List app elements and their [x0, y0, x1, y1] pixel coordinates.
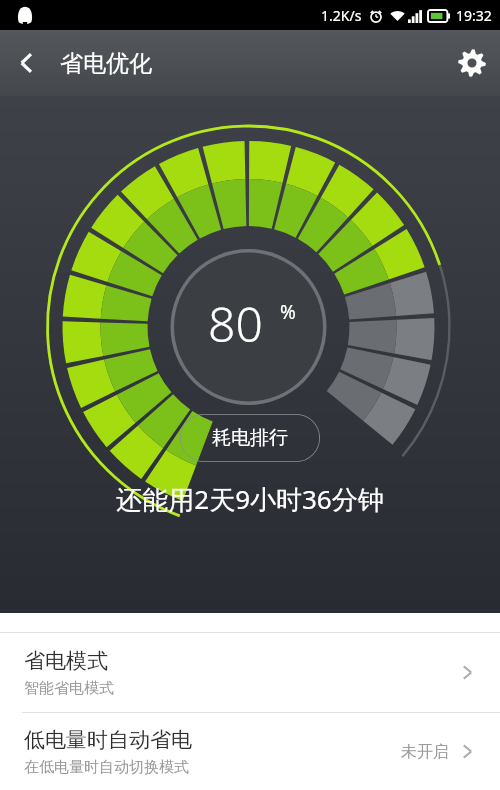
staticText: 耗电排行	[212, 426, 288, 450]
button[interactable]: 省电模式	[0, 633, 500, 712]
staticText: %	[280, 299, 296, 325]
button[interactable]: 低电量时自动省电	[0, 713, 500, 790]
staticText: 在低电量时自动切换模式	[24, 758, 189, 777]
staticText: 80	[208, 291, 263, 356]
button[interactable]: 耗电排行	[180, 414, 320, 462]
button[interactable]: Settings	[444, 35, 500, 91]
staticText: 1.2K/s	[321, 6, 362, 25]
staticText: 还能用2天9小时36分钟	[116, 481, 384, 517]
staticText: 低电量时自动省电	[24, 727, 192, 753]
button[interactable]: Back	[0, 36, 54, 90]
staticText: 未开启	[401, 742, 449, 762]
staticText: 省电模式	[24, 648, 108, 674]
staticText: 19:32	[456, 6, 492, 25]
staticText: 省电优化	[60, 49, 152, 78]
staticText: 智能省电模式	[24, 679, 114, 698]
